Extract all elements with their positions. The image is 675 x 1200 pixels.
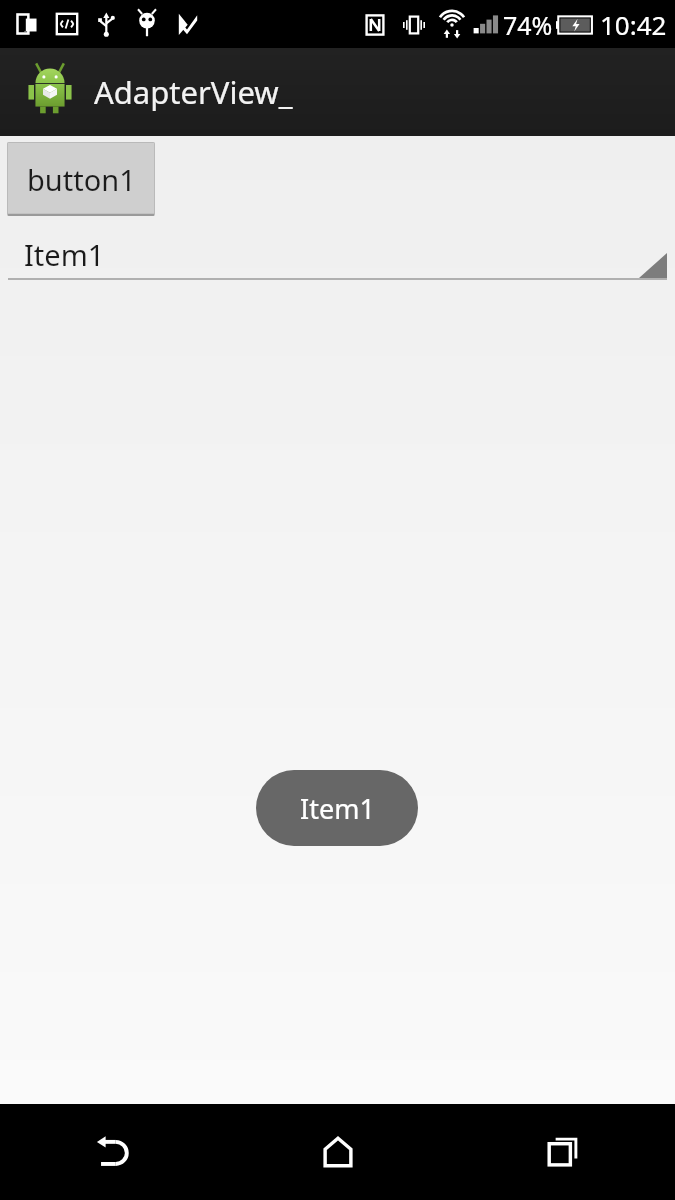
button[interactable]: button1 (7, 142, 155, 216)
staticText: Item1 (300, 790, 375, 827)
button[interactable]: Back (0, 1104, 225, 1200)
staticText: button1 (27, 160, 136, 199)
button[interactable]: Item1 (0, 228, 675, 288)
staticText: 74% (503, 8, 553, 42)
button[interactable]: Recents (450, 1104, 675, 1200)
staticText: Item1 (24, 235, 105, 274)
button[interactable]: Home (225, 1104, 450, 1200)
staticText: 10:42 (600, 7, 667, 42)
staticText: AdapterView_ (94, 71, 293, 113)
